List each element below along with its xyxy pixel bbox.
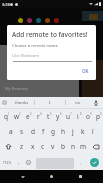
- button[interactable]: k: [78, 124, 88, 139]
- button[interactable]: 1: [0, 109, 11, 124]
- staticText: u: [66, 112, 71, 121]
- button[interactable]: Back: [16, 170, 29, 183]
- staticText: 9: [90, 112, 92, 116]
- staticText: o: [86, 112, 90, 121]
- button[interactable]: ?123: [0, 154, 14, 170]
- staticText: j: [72, 127, 74, 136]
- staticText: b: [61, 142, 65, 151]
- button[interactable]: ,: [14, 154, 23, 170]
- staticText: 1: [8, 112, 10, 116]
- button[interactable]: 7: [63, 109, 73, 124]
- button[interactable]: x: [27, 139, 38, 154]
- button[interactable]: m: [78, 139, 88, 154]
- button[interactable]: Expand suggestions: [0, 97, 9, 108]
- button[interactable]: v: [48, 139, 58, 154]
- staticText: .: [80, 159, 82, 165]
- button[interactable]: b: [58, 139, 68, 154]
- button[interactable]: Emoji: [23, 154, 34, 170]
- button[interactable]: f: [38, 124, 48, 139]
- button[interactable]: I: [35, 97, 65, 108]
- button[interactable]: Enter: [86, 154, 103, 170]
- button[interactable]: .: [76, 154, 86, 170]
- staticText: w: [14, 112, 20, 121]
- staticText: 5: [50, 112, 52, 116]
- button[interactable]: no: [66, 97, 90, 108]
- button[interactable]: j: [68, 124, 78, 139]
- staticText: n: [71, 142, 76, 151]
- staticText: 4: [40, 112, 42, 116]
- staticText: I: [49, 100, 51, 106]
- staticText: Add remote to favorites!: [12, 30, 88, 39]
- staticText: g: [51, 127, 55, 136]
- staticText: 7: [70, 112, 72, 116]
- staticText: x: [31, 142, 35, 151]
- staticText: e: [26, 112, 30, 121]
- staticText: 6: [60, 112, 62, 116]
- staticText: p: [96, 112, 100, 121]
- button[interactable]: l: [88, 124, 98, 139]
- button[interactable]: c: [38, 139, 48, 154]
- staticText: r: [37, 112, 40, 121]
- staticText: t: [47, 112, 50, 121]
- button[interactable]: OK: [77, 65, 93, 77]
- staticText: f: [42, 127, 45, 136]
- button[interactable]: 0: [93, 109, 103, 124]
- staticText: i: [77, 112, 79, 121]
- staticText: q: [4, 112, 8, 121]
- staticText: y: [56, 112, 60, 121]
- staticText: thanks: [15, 100, 29, 106]
- staticText: ?123: [3, 160, 11, 165]
- staticText: Like Bedroom: [12, 53, 40, 59]
- staticText: My Remotes: [5, 86, 29, 91]
- staticText: 2: [19, 112, 21, 116]
- staticText: ,: [18, 159, 20, 165]
- button[interactable]: h: [58, 124, 68, 139]
- button[interactable]: z: [16, 139, 27, 154]
- staticText: 0: [100, 112, 102, 116]
- staticText: l: [92, 127, 94, 136]
- button[interactable]: Shift: [0, 139, 16, 154]
- button[interactable]: a: [5, 124, 16, 139]
- button[interactable]: 2: [11, 109, 22, 124]
- staticText: s: [20, 127, 24, 136]
- staticText: no: [75, 100, 81, 106]
- staticText: k: [81, 127, 85, 136]
- button[interactable]: Home: [45, 170, 58, 183]
- button[interactable]: 6: [53, 109, 63, 124]
- button[interactable]: d: [27, 124, 38, 139]
- button[interactable]: Recents: [74, 170, 87, 183]
- button[interactable]: Backspace: [88, 139, 103, 154]
- button[interactable]: 5: [43, 109, 53, 124]
- button[interactable]: s: [16, 124, 27, 139]
- button[interactable]: thanks: [9, 97, 34, 108]
- button[interactable]: 3: [22, 109, 33, 124]
- button[interactable]: Voice input: [89, 97, 103, 108]
- staticText: m: [80, 142, 87, 151]
- staticText: a: [9, 127, 13, 136]
- staticText: 3: [30, 112, 32, 116]
- staticText: c: [41, 142, 45, 151]
- staticText: 8: [80, 112, 82, 116]
- staticText: OK: [82, 68, 89, 74]
- staticText: d: [31, 127, 35, 136]
- button[interactable]: g: [48, 124, 58, 139]
- button[interactable]: 8: [73, 109, 83, 124]
- staticText: z: [20, 142, 24, 151]
- button[interactable]: 4: [33, 109, 43, 124]
- staticText: v: [51, 142, 55, 151]
- staticText: h: [61, 127, 66, 136]
- button[interactable]: 9: [83, 109, 93, 124]
- button[interactable]: n: [68, 139, 78, 154]
- staticText: Choose a remote name: [12, 43, 58, 49]
- staticText: 3:36: [2, 2, 10, 7]
